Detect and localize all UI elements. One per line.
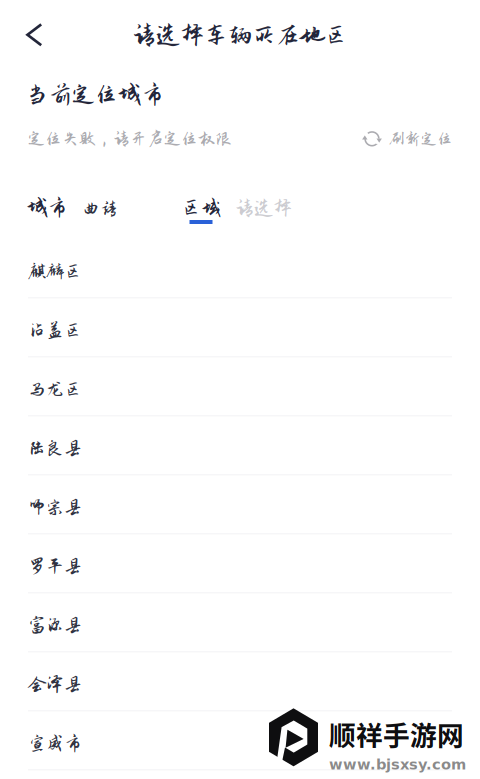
staticText: 富源县 xyxy=(28,615,82,635)
staticText: 区域 xyxy=(181,196,221,219)
staticText: 曲靖 xyxy=(82,199,118,219)
staticText: 会泽县 xyxy=(28,674,82,694)
staticText: www.bjsxsy.com xyxy=(329,756,466,773)
button[interactable]: 城市 xyxy=(27,196,118,226)
button[interactable]: 返回 xyxy=(0,13,70,57)
staticText: 马龙区 xyxy=(28,379,82,399)
button[interactable]: 陆良县 xyxy=(0,416,480,475)
button[interactable]: 区域 xyxy=(181,196,292,226)
staticText: 当前定位城市 xyxy=(26,82,164,107)
button[interactable]: 麒麟区 xyxy=(0,239,480,298)
staticText: 请选择车辆所在地区 xyxy=(132,22,348,48)
staticText: 请选择 xyxy=(235,197,292,219)
staticText: 罗平县 xyxy=(28,556,82,576)
staticText: 麒麟区 xyxy=(28,261,82,281)
button[interactable]: 会泽县 xyxy=(0,652,480,711)
button[interactable]: 罗平县 xyxy=(0,534,480,593)
button[interactable]: 宣威市 xyxy=(0,711,480,770)
staticText: 城市 xyxy=(27,196,67,219)
staticText: 宣威市 xyxy=(28,733,82,753)
button[interactable]: 富源县 xyxy=(0,593,480,652)
staticText: 师宗县 xyxy=(28,497,82,517)
staticText: 定位失败，请开启定位权限 xyxy=(28,129,232,148)
staticText: 沾益区 xyxy=(28,320,82,340)
button[interactable]: 刷新定位 xyxy=(362,129,453,148)
button[interactable]: 师宗县 xyxy=(0,475,480,534)
staticText: 顺祥手游网 xyxy=(329,714,464,753)
button[interactable]: 马龙区 xyxy=(0,357,480,416)
button[interactable]: 沾益区 xyxy=(0,298,480,357)
staticText: 陆良县 xyxy=(28,438,82,458)
staticText: 刷新定位 xyxy=(389,130,453,147)
